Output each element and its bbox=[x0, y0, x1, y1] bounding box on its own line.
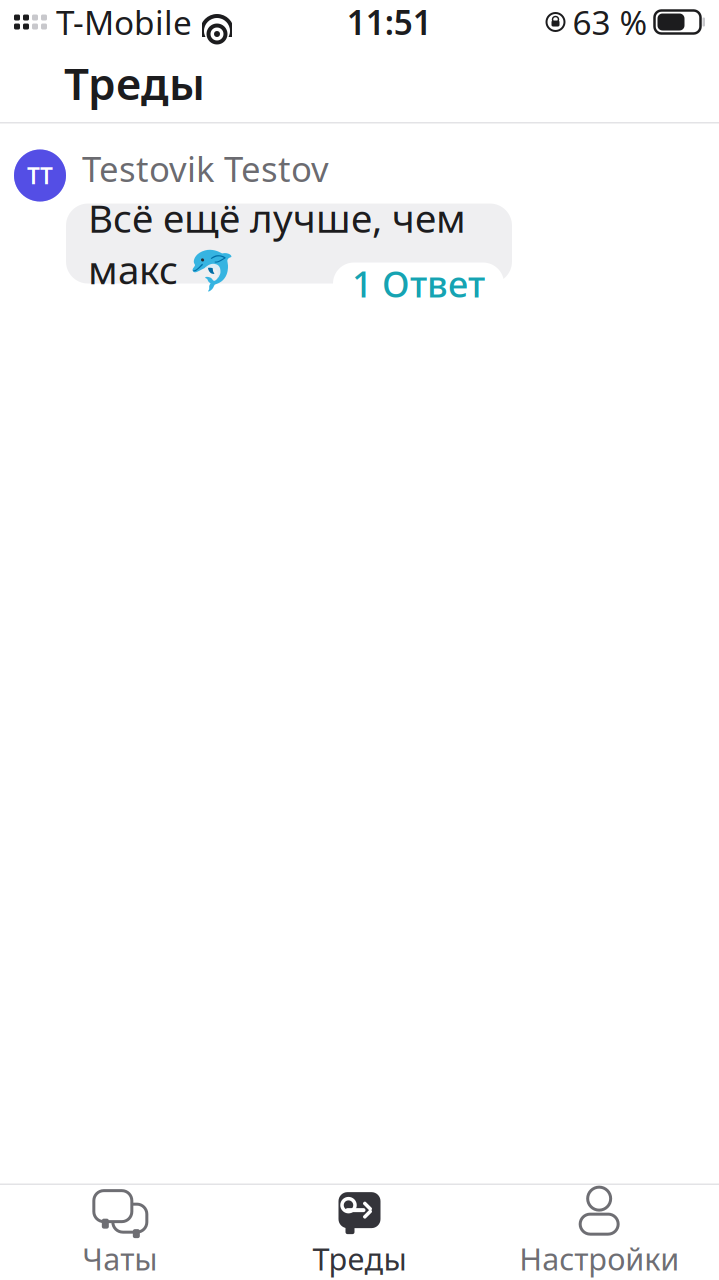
staticText: Чаты bbox=[82, 1238, 157, 1279]
staticText: Треды bbox=[312, 1238, 406, 1279]
staticText: 63 % bbox=[572, 0, 647, 44]
button[interactable]: Треды bbox=[240, 1185, 479, 1280]
button[interactable]: TT bbox=[0, 123, 719, 304]
button[interactable]: Чаты bbox=[0, 1185, 240, 1280]
staticText: Настройки bbox=[519, 1238, 679, 1279]
staticText: TT bbox=[27, 160, 53, 190]
staticText: 11:51 bbox=[347, 0, 432, 44]
staticText: 1 Ответ bbox=[352, 260, 485, 307]
staticText: Всё ещё лучше, чем макс 🐬 bbox=[88, 192, 466, 295]
staticText: Треды bbox=[64, 54, 205, 112]
staticText: T-Mobile bbox=[56, 0, 192, 44]
staticText: Testovik Testov bbox=[82, 145, 329, 191]
button[interactable]: Настройки bbox=[479, 1185, 719, 1280]
